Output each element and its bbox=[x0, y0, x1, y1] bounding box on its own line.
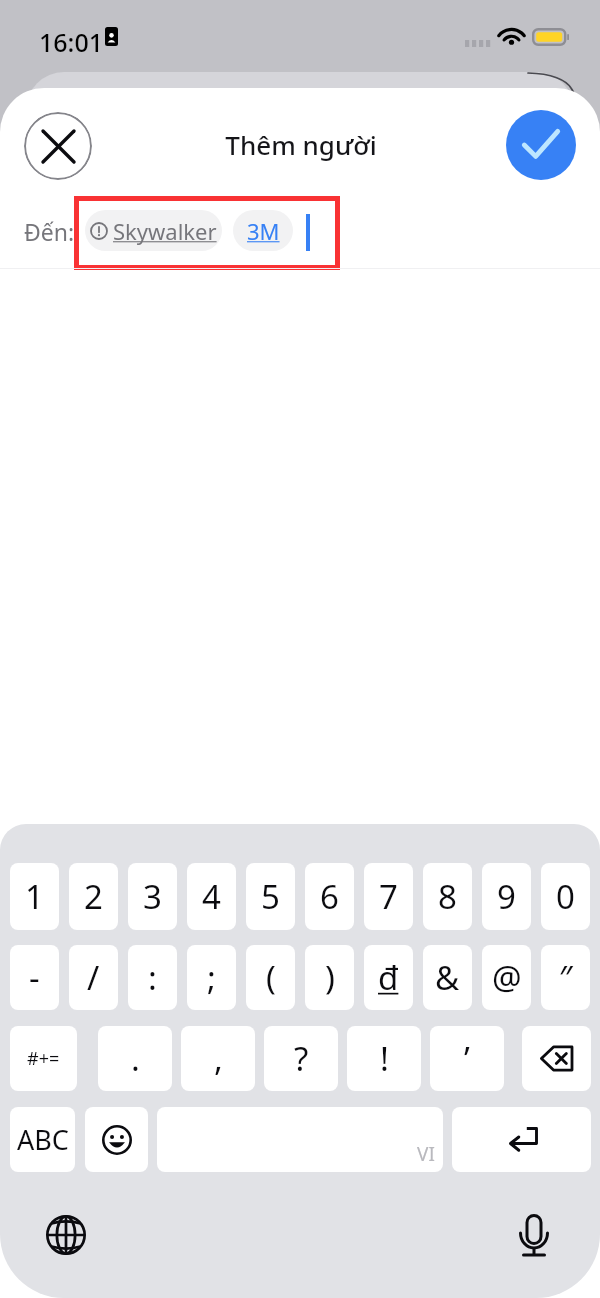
staticText: Thêm người bbox=[1, 127, 600, 162]
staticText: Đến: bbox=[24, 216, 75, 247]
button[interactable]: Change keyboard bbox=[36, 1205, 96, 1265]
staticText: & bbox=[435, 955, 460, 1000]
button[interactable]: ? bbox=[264, 1026, 338, 1091]
button[interactable]: 3 bbox=[128, 863, 177, 930]
staticText: - bbox=[29, 955, 40, 1000]
staticText: 9 bbox=[497, 874, 516, 919]
staticText: 8 bbox=[438, 874, 457, 919]
staticText: VI bbox=[417, 1141, 435, 1167]
button[interactable]: Space bbox=[157, 1107, 443, 1172]
button[interactable]: 7 bbox=[364, 863, 413, 930]
button[interactable]: : bbox=[128, 945, 177, 1010]
staticText: ; bbox=[207, 955, 216, 1000]
button[interactable]: Backspace bbox=[522, 1026, 591, 1091]
staticText: , bbox=[214, 1036, 223, 1081]
button[interactable]: 6 bbox=[305, 863, 354, 930]
staticText: ! bbox=[380, 1036, 389, 1081]
button[interactable]: ’ bbox=[430, 1026, 504, 1091]
button[interactable]: 1 bbox=[10, 863, 59, 930]
button[interactable]: ) bbox=[305, 945, 354, 1010]
staticText: ABC bbox=[17, 1121, 69, 1158]
staticText: 3M bbox=[247, 216, 280, 246]
button[interactable]: Enter bbox=[452, 1107, 591, 1172]
staticText: ? bbox=[294, 1036, 309, 1081]
button[interactable]: 3M bbox=[233, 210, 293, 251]
button[interactable]: 9 bbox=[482, 863, 531, 930]
button[interactable]: Skywalker bbox=[85, 210, 222, 251]
button[interactable]: & bbox=[423, 945, 472, 1010]
staticText: đ bbox=[378, 955, 399, 1000]
button[interactable]: #+= bbox=[10, 1026, 77, 1091]
button[interactable]: d stroke bbox=[364, 945, 413, 1010]
staticText: 3 bbox=[143, 874, 162, 919]
staticText: . bbox=[131, 1036, 140, 1081]
staticText: Skywalker bbox=[113, 216, 217, 246]
staticText: 1 bbox=[25, 874, 44, 919]
staticText: ) bbox=[325, 955, 335, 1000]
staticText: 7 bbox=[379, 874, 398, 919]
button[interactable]: Emoji bbox=[85, 1107, 148, 1172]
staticText: #+= bbox=[27, 1046, 60, 1071]
button[interactable]: ; bbox=[187, 945, 236, 1010]
button[interactable]: Confirm bbox=[506, 110, 576, 180]
button[interactable]: Voice input bbox=[504, 1205, 564, 1265]
staticText: 16:01 bbox=[39, 25, 104, 59]
staticText: ( bbox=[266, 955, 276, 1000]
button[interactable]: 4 bbox=[187, 863, 236, 930]
button[interactable]: / bbox=[69, 945, 118, 1010]
staticText: 0 bbox=[556, 874, 575, 919]
button[interactable]: 5 bbox=[246, 863, 295, 930]
button[interactable]: 2 bbox=[69, 863, 118, 930]
button[interactable]: , bbox=[181, 1026, 255, 1091]
button[interactable]: Close bbox=[24, 112, 92, 180]
staticText: 6 bbox=[320, 874, 339, 919]
button[interactable]: ( bbox=[246, 945, 295, 1010]
button[interactable]: ″ bbox=[541, 945, 590, 1010]
button[interactable]: 8 bbox=[423, 863, 472, 930]
staticText: ″ bbox=[559, 955, 573, 1000]
button[interactable]: - bbox=[10, 945, 59, 1010]
staticText: / bbox=[87, 955, 100, 1000]
button[interactable]: ! bbox=[347, 1026, 421, 1091]
staticText: : bbox=[148, 955, 157, 1000]
button[interactable]: 0 bbox=[541, 863, 590, 930]
staticText: ’ bbox=[464, 1036, 470, 1081]
staticText: 4 bbox=[202, 874, 221, 919]
staticText: 5 bbox=[261, 874, 280, 919]
button[interactable]: @ bbox=[482, 945, 531, 1010]
staticText: 2 bbox=[84, 874, 103, 919]
staticText: @ bbox=[492, 955, 522, 1000]
button[interactable]: ABC bbox=[10, 1107, 75, 1172]
button[interactable]: . bbox=[98, 1026, 172, 1091]
